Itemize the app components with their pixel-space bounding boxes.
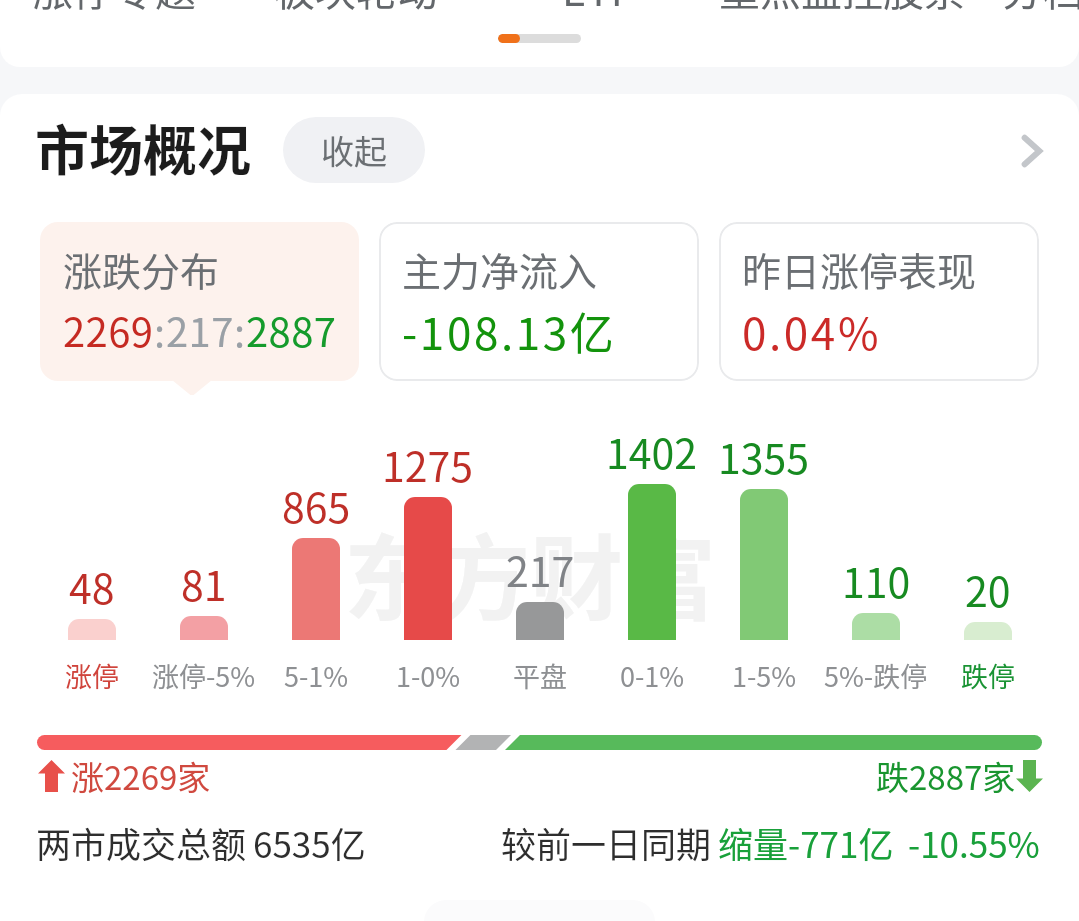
button[interactable]: 涨跌分布 [40,222,359,381]
staticText: 涨停 [65,656,119,695]
staticText: -10.55% [908,817,1040,868]
staticText: 昨日涨停表现 [742,241,977,297]
button[interactable]: 涨停-5% 81 [148,410,260,695]
staticText: 110 [842,550,911,609]
staticText: : [154,301,166,359]
staticText: 两市成交总额 [36,817,247,868]
staticText: 涨2269家 [71,752,211,800]
button[interactable]: 涨停 48 [36,410,148,695]
button[interactable]: 重点监控股票 [719,0,965,17]
staticText: 6535亿 [253,817,366,868]
staticText: 分档 [1002,0,1079,17]
staticText: 1355 [718,426,810,485]
button[interactable]: 平盘 217 [484,410,596,695]
button[interactable]: Open market overview [1003,122,1061,180]
button[interactable]: 1-5% 1355 [708,410,820,695]
button[interactable]: ETF [562,0,634,17]
button[interactable]: 0-1% 1402 [596,410,708,695]
button[interactable]: 收起 [283,117,425,183]
button[interactable]: 跌停 20 [932,410,1044,695]
staticText: 市场概况 [35,108,251,186]
staticText: 1402 [606,421,698,480]
button[interactable]: 涨停专题 [32,0,196,17]
staticText: -108.13亿 [402,299,617,363]
staticText: 重点监控股票 [719,0,965,17]
button[interactable]: 涨2269家 [0,750,1079,810]
staticText: 1-5% [732,656,797,695]
staticText: 217 [506,539,575,598]
button[interactable]: 板块轮动 [274,0,438,17]
staticText: 跌停 [961,656,1015,695]
staticText: 收起 [321,126,387,174]
button[interactable]: 昨日涨停表现 [719,222,1039,381]
staticText: 48 [69,556,115,615]
staticText: ETF [562,0,634,17]
button[interactable]: 市场概况 [27,100,259,194]
button[interactable]: 主力净流入 [379,222,699,381]
button[interactable]: 分档 [1002,0,1079,17]
staticText: 涨跌分布 [63,241,220,297]
staticText: 东方财富 [344,505,716,640]
staticText: 板块轮动 [274,0,438,17]
staticText: 涨停-5% [152,656,256,695]
staticText: 5%-跌停 [824,656,928,695]
staticText: 涨停专题 [32,0,196,17]
staticText: 2269 [63,301,154,359]
button[interactable]: 两市成交总额 [0,817,1079,873]
staticText: 较前一日同期 [501,817,712,868]
staticText: 主力净流入 [402,241,598,297]
staticText: 865 [282,475,351,534]
staticText: 2887 [246,301,337,359]
staticText: 缩量-771亿 [718,817,894,868]
staticText: 跌2887家 [876,752,1016,800]
staticText: 81 [181,553,227,612]
staticText: 平盘 [513,656,567,695]
button[interactable]: 5%-跌停 110 [820,410,932,695]
button[interactable]: 5-1% 865 [260,410,372,695]
staticText: 0.04% [742,299,882,363]
staticText: 1-0% [396,656,461,695]
staticText: 5-1% [284,656,349,695]
staticText: 1275 [382,434,474,493]
staticText: 217 [166,301,234,359]
button[interactable]: 1-0% 1275 [372,410,484,695]
staticText: 20 [965,559,1011,618]
staticText: : [234,301,246,359]
staticText: 0-1% [620,656,685,695]
